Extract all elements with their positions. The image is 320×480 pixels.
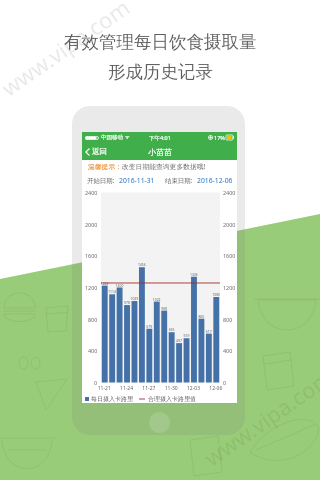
staticText: 小苗苗 [148,147,172,157]
staticText: 2016-11-31 [119,176,155,185]
staticText: 中国移动 [101,134,123,141]
staticText: 返回 [92,147,107,156]
staticText: 17% [214,134,225,141]
staticText: 开始日期: [87,176,115,185]
staticText: 形成历史记录 [108,61,213,83]
staticText: 改变日期能查询更多数据哦! [122,162,206,171]
button[interactable]: 2016-11-31 [119,176,155,185]
staticText: 下午4:01 [149,134,171,142]
staticText: 有效管理每日饮食摄取量 [64,31,257,53]
staticText: 温馨提示： [88,162,122,171]
button[interactable]: 返回 [85,143,107,160]
staticText: 2016-12-06 [197,176,233,185]
staticText: ᯤ [125,134,130,141]
staticText: 结束日期: [165,176,193,185]
button[interactable]: 2016-12-06 [197,176,233,185]
